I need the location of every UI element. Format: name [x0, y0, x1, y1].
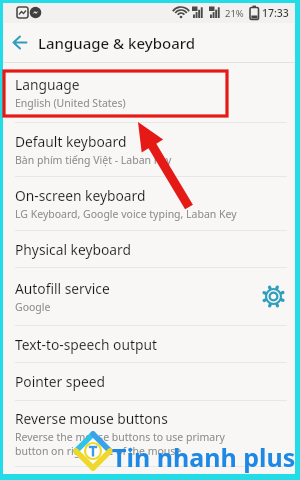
button[interactable]: Autofill service: [3, 268, 295, 325]
staticText: Language & keyboard: [38, 33, 196, 53]
button[interactable]: Language: [3, 63, 295, 122]
staticText: 21%: [225, 7, 244, 20]
staticText: English (United States): [15, 96, 126, 110]
staticText: Default keyboard: [15, 132, 127, 151]
staticText: Physical keyboard: [15, 240, 131, 259]
staticText: Google: [15, 300, 51, 314]
staticText: Autofill service: [15, 279, 110, 298]
staticText: Reverse mouse buttons: [15, 409, 168, 428]
staticText: Tin nhanh plus: [112, 440, 296, 474]
button[interactable]: Text-to-speech output: [3, 326, 295, 362]
button[interactable]: [11, 34, 28, 51]
staticText: Reverse the mouse buttons to use primary…: [15, 430, 225, 458]
button[interactable]: Reverse mouse buttons: [3, 401, 295, 466]
button[interactable]: Tin nhanh plus: [112, 440, 296, 474]
button[interactable]: On-screen keyboard: [3, 177, 295, 230]
staticText: Language: [15, 75, 80, 94]
staticText: Pointer speed: [15, 372, 105, 391]
staticText: Text-to-speech output: [15, 335, 157, 354]
staticText: On-screen keyboard: [15, 186, 146, 205]
staticText: 17:33: [262, 6, 289, 20]
staticText: LG Keyboard, Google voice typing, Laban …: [15, 207, 237, 221]
button[interactable]: Default keyboard: [3, 123, 295, 176]
button[interactable]: Pointer speed: [3, 363, 295, 400]
staticText: Bàn phím tiếng Việt - Laban Key: [15, 153, 172, 167]
button[interactable]: Physical keyboard: [3, 231, 295, 267]
